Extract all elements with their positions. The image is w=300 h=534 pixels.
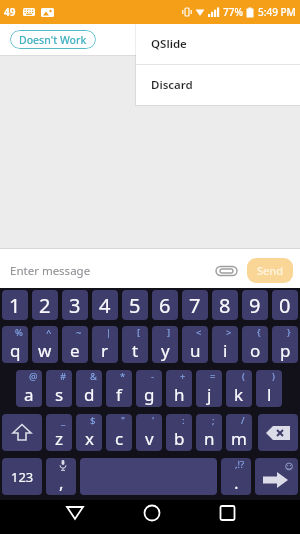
button[interactable]: | bbox=[92, 326, 118, 363]
staticText: p bbox=[280, 339, 291, 362]
staticText: v bbox=[145, 427, 154, 450]
button[interactable]: 0 bbox=[272, 290, 298, 320]
button[interactable]: { bbox=[242, 326, 268, 363]
staticText: | bbox=[106, 326, 112, 339]
staticText: 5 bbox=[129, 292, 141, 319]
staticText: q bbox=[10, 339, 21, 362]
staticText: 5:49 PM bbox=[258, 5, 296, 19]
button[interactable]: Send bbox=[247, 258, 293, 283]
staticText: l bbox=[267, 383, 272, 406]
staticText: ^ bbox=[46, 326, 52, 339]
staticText: o bbox=[250, 339, 261, 362]
staticText: ] bbox=[167, 326, 171, 339]
button[interactable] bbox=[255, 458, 298, 495]
button[interactable]: Discard bbox=[136, 65, 300, 105]
staticText: 1 bbox=[9, 292, 21, 319]
staticText: b bbox=[174, 427, 185, 450]
staticText: + bbox=[180, 370, 186, 383]
staticText: ' bbox=[152, 414, 155, 427]
button[interactable]: / bbox=[226, 414, 252, 451]
staticText: ,!? bbox=[235, 458, 245, 471]
staticText: 7 bbox=[189, 292, 201, 319]
staticText: 8 bbox=[219, 292, 231, 319]
staticText: : bbox=[182, 414, 185, 427]
staticText: = bbox=[210, 370, 216, 383]
staticText: ; bbox=[212, 414, 215, 427]
button[interactable] bbox=[200, 500, 300, 534]
staticText: z bbox=[55, 427, 63, 450]
staticText: Send bbox=[257, 263, 284, 278]
button[interactable]: 8 bbox=[212, 290, 238, 320]
staticText: 6 bbox=[159, 292, 171, 319]
button[interactable]: ' bbox=[136, 414, 162, 451]
button[interactable]: 1 bbox=[2, 290, 28, 320]
button[interactable]: ; bbox=[196, 414, 222, 451]
button[interactable]: ] bbox=[152, 326, 178, 363]
button[interactable]: } bbox=[272, 326, 298, 363]
staticText: < bbox=[196, 326, 202, 339]
staticText: ( bbox=[242, 370, 245, 383]
staticText: ) bbox=[272, 370, 275, 383]
staticText: s bbox=[55, 383, 64, 406]
button[interactable]: 123 bbox=[2, 458, 42, 495]
staticText: a bbox=[24, 383, 34, 406]
button[interactable]: ,!? bbox=[221, 458, 251, 495]
button[interactable] bbox=[215, 264, 239, 278]
button[interactable]: : bbox=[166, 414, 192, 451]
staticText: d bbox=[84, 383, 95, 406]
button[interactable] bbox=[0, 500, 100, 534]
button[interactable]: Doesn't Work bbox=[10, 30, 96, 49]
button[interactable]: 9 bbox=[242, 290, 268, 320]
button[interactable] bbox=[2, 414, 42, 451]
staticText: " bbox=[121, 414, 125, 427]
staticText: Doesn't Work bbox=[19, 33, 87, 47]
button[interactable]: ( bbox=[226, 370, 252, 407]
staticText: r bbox=[101, 339, 109, 362]
staticText: } bbox=[287, 326, 291, 339]
staticText: ~ bbox=[76, 326, 82, 339]
staticText: . bbox=[234, 471, 239, 494]
staticText: j bbox=[207, 383, 212, 406]
button[interactable]: 5 bbox=[122, 290, 148, 320]
button[interactable]: [ bbox=[122, 326, 148, 363]
staticText: QSlide bbox=[151, 36, 187, 52]
button[interactable]: $ bbox=[76, 414, 102, 451]
button[interactable]: _ bbox=[46, 414, 72, 451]
staticText: 2 bbox=[39, 292, 51, 319]
button[interactable]: ^ bbox=[32, 326, 58, 363]
button[interactable] bbox=[80, 458, 217, 495]
button[interactable]: * bbox=[106, 370, 132, 407]
button[interactable]: < bbox=[182, 326, 208, 363]
button[interactable]: ~ bbox=[62, 326, 88, 363]
staticText: / bbox=[241, 414, 245, 427]
button[interactable]: % bbox=[2, 326, 28, 363]
button[interactable]: 2 bbox=[32, 290, 58, 320]
staticText: * bbox=[120, 370, 126, 383]
button[interactable]: QSlide bbox=[136, 24, 300, 64]
staticText: > bbox=[226, 326, 232, 339]
button[interactable]: 4 bbox=[92, 290, 118, 320]
button[interactable]: , bbox=[46, 458, 76, 495]
staticText: _ bbox=[61, 414, 66, 427]
button[interactable] bbox=[258, 414, 298, 451]
button[interactable]: - bbox=[136, 370, 162, 407]
button[interactable]: @ bbox=[16, 370, 42, 407]
button[interactable] bbox=[100, 500, 200, 534]
button[interactable]: & bbox=[76, 370, 102, 407]
staticText: 3 bbox=[69, 292, 81, 319]
staticText: n bbox=[204, 427, 215, 450]
button[interactable]: 3 bbox=[62, 290, 88, 320]
button[interactable]: > bbox=[212, 326, 238, 363]
staticText: i bbox=[223, 339, 228, 362]
button[interactable]: 6 bbox=[152, 290, 178, 320]
button[interactable]: " bbox=[106, 414, 132, 451]
staticText: u bbox=[190, 339, 201, 362]
button[interactable]: = bbox=[196, 370, 222, 407]
button[interactable]: # bbox=[46, 370, 72, 407]
button[interactable]: 7 bbox=[182, 290, 208, 320]
staticText: h bbox=[174, 383, 185, 406]
staticText: # bbox=[60, 370, 67, 383]
button[interactable]: ) bbox=[256, 370, 282, 407]
button[interactable]: + bbox=[166, 370, 192, 407]
staticText: 9 bbox=[249, 292, 261, 319]
